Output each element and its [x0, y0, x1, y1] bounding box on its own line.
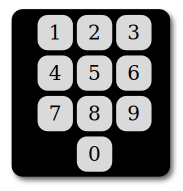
button[interactable]: 3 [116, 15, 152, 50]
button[interactable]: 1 [38, 15, 73, 50]
staticText: 8 [88, 102, 101, 125]
button[interactable]: 5 [77, 55, 112, 91]
staticText: 2 [88, 21, 101, 44]
button[interactable]: 2 [77, 15, 112, 50]
staticText: 4 [49, 61, 62, 85]
staticText: 5 [88, 61, 101, 85]
button[interactable]: 8 [77, 96, 112, 131]
staticText: 7 [49, 102, 62, 125]
staticText: 6 [127, 61, 140, 85]
button[interactable]: 4 [38, 55, 73, 91]
staticText: 9 [127, 102, 140, 125]
button[interactable]: 9 [116, 96, 152, 131]
button[interactable]: 6 [116, 55, 152, 91]
staticText: 3 [127, 21, 140, 44]
button[interactable]: 0 [77, 136, 112, 172]
staticText: 0 [88, 142, 101, 166]
button[interactable]: 7 [38, 96, 73, 131]
staticText: 1 [49, 21, 62, 44]
